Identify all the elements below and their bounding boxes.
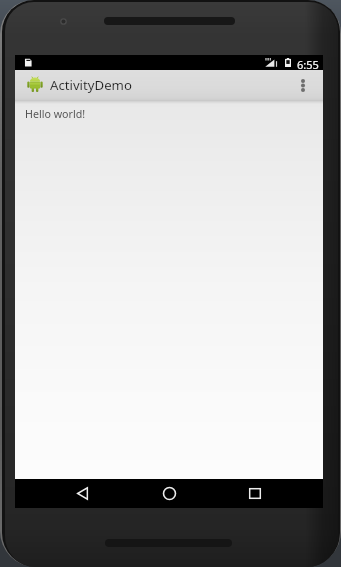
staticText: Hello world!: [25, 107, 86, 122]
staticText: 6:55: [297, 57, 319, 72]
button[interactable]: Home: [139, 479, 199, 508]
staticText: ActivityDemo: [50, 76, 132, 94]
button[interactable]: More options: [289, 70, 317, 100]
button[interactable]: Recent apps: [225, 479, 285, 508]
button[interactable]: Back: [52, 479, 112, 508]
